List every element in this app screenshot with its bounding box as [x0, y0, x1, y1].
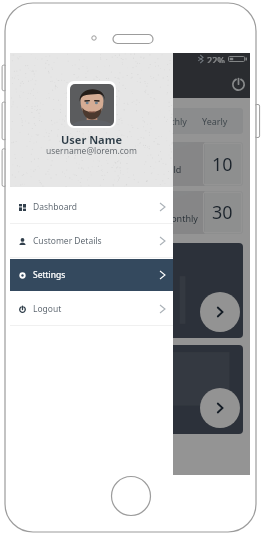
- staticText: Dashboard: [33, 201, 78, 213]
- staticText: User Name: [61, 132, 123, 147]
- button[interactable]: Logout: [10, 292, 173, 326]
- staticText: username@lorem.com: [46, 145, 137, 157]
- staticText: Monthly: [152, 115, 187, 127]
- staticText: 10: [212, 152, 233, 177]
- button[interactable]: Open details: [200, 388, 240, 428]
- button[interactable]: Daily: [54, 108, 100, 134]
- button[interactable]: Power: [227, 73, 249, 95]
- button[interactable]: Open details: [200, 292, 240, 332]
- button[interactable]: Sold: [17, 142, 243, 186]
- button[interactable]: Weekly: [100, 108, 146, 134]
- button[interactable]: Open details: [17, 345, 243, 434]
- staticText: Customer Details: [33, 235, 102, 247]
- staticText: Monthly: [163, 212, 198, 224]
- button[interactable]: Monthly: [146, 108, 192, 134]
- button[interactable]: Open details: [17, 243, 243, 338]
- staticText: 30: [212, 200, 233, 225]
- staticText: Settings: [33, 269, 66, 281]
- button[interactable]: Dashboard: [10, 190, 173, 224]
- staticText: Yearly: [202, 115, 228, 127]
- staticText: 22%: [207, 54, 225, 63]
- staticText: Weekly: [108, 115, 139, 127]
- staticText: Sold: [163, 163, 182, 175]
- staticText: Daily: [67, 115, 88, 127]
- button[interactable]: Monthly: [17, 191, 243, 234]
- button[interactable]: Yearly: [192, 108, 238, 134]
- button[interactable]: Customer Details: [10, 224, 173, 258]
- button[interactable]: Settings: [10, 259, 173, 291]
- staticText: Logout: [33, 303, 62, 315]
